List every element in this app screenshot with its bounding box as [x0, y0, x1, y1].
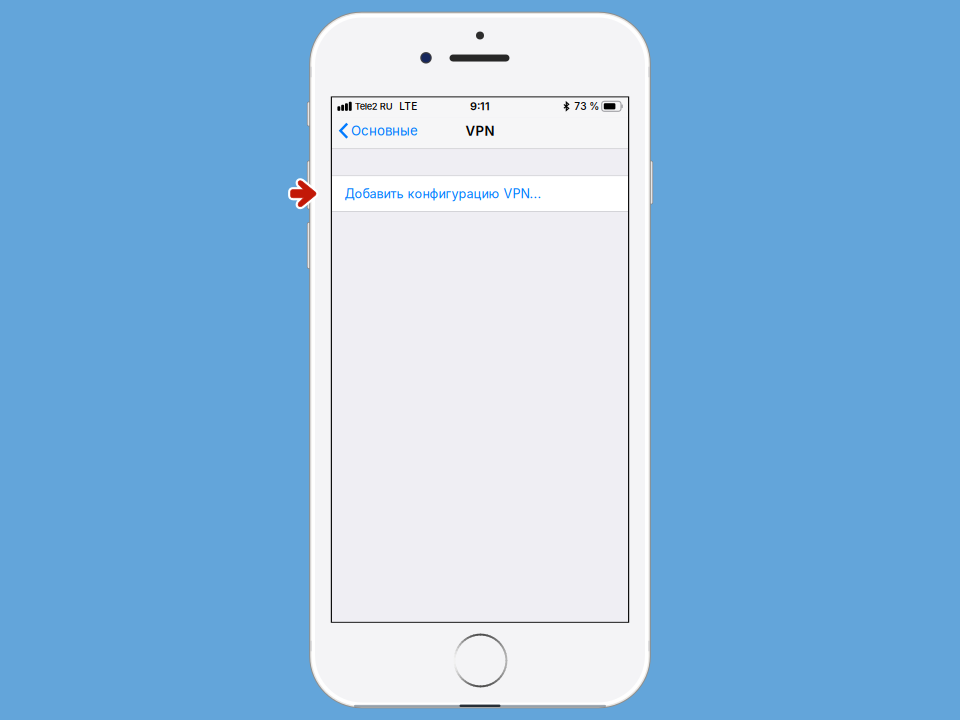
- staticText: LTE: [399, 100, 417, 112]
- button[interactable]: Добавить конфигурацию VPN...: [332, 176, 628, 211]
- staticText: Tele2 RU: [355, 101, 393, 112]
- button[interactable]: Основные: [332, 115, 424, 146]
- staticText: 9:11: [470, 100, 490, 113]
- staticText: Основные: [351, 123, 418, 139]
- staticText: VPN: [465, 123, 494, 139]
- staticText: 73 %: [574, 100, 599, 112]
- staticText: Добавить конфигурацию VPN...: [344, 186, 541, 201]
